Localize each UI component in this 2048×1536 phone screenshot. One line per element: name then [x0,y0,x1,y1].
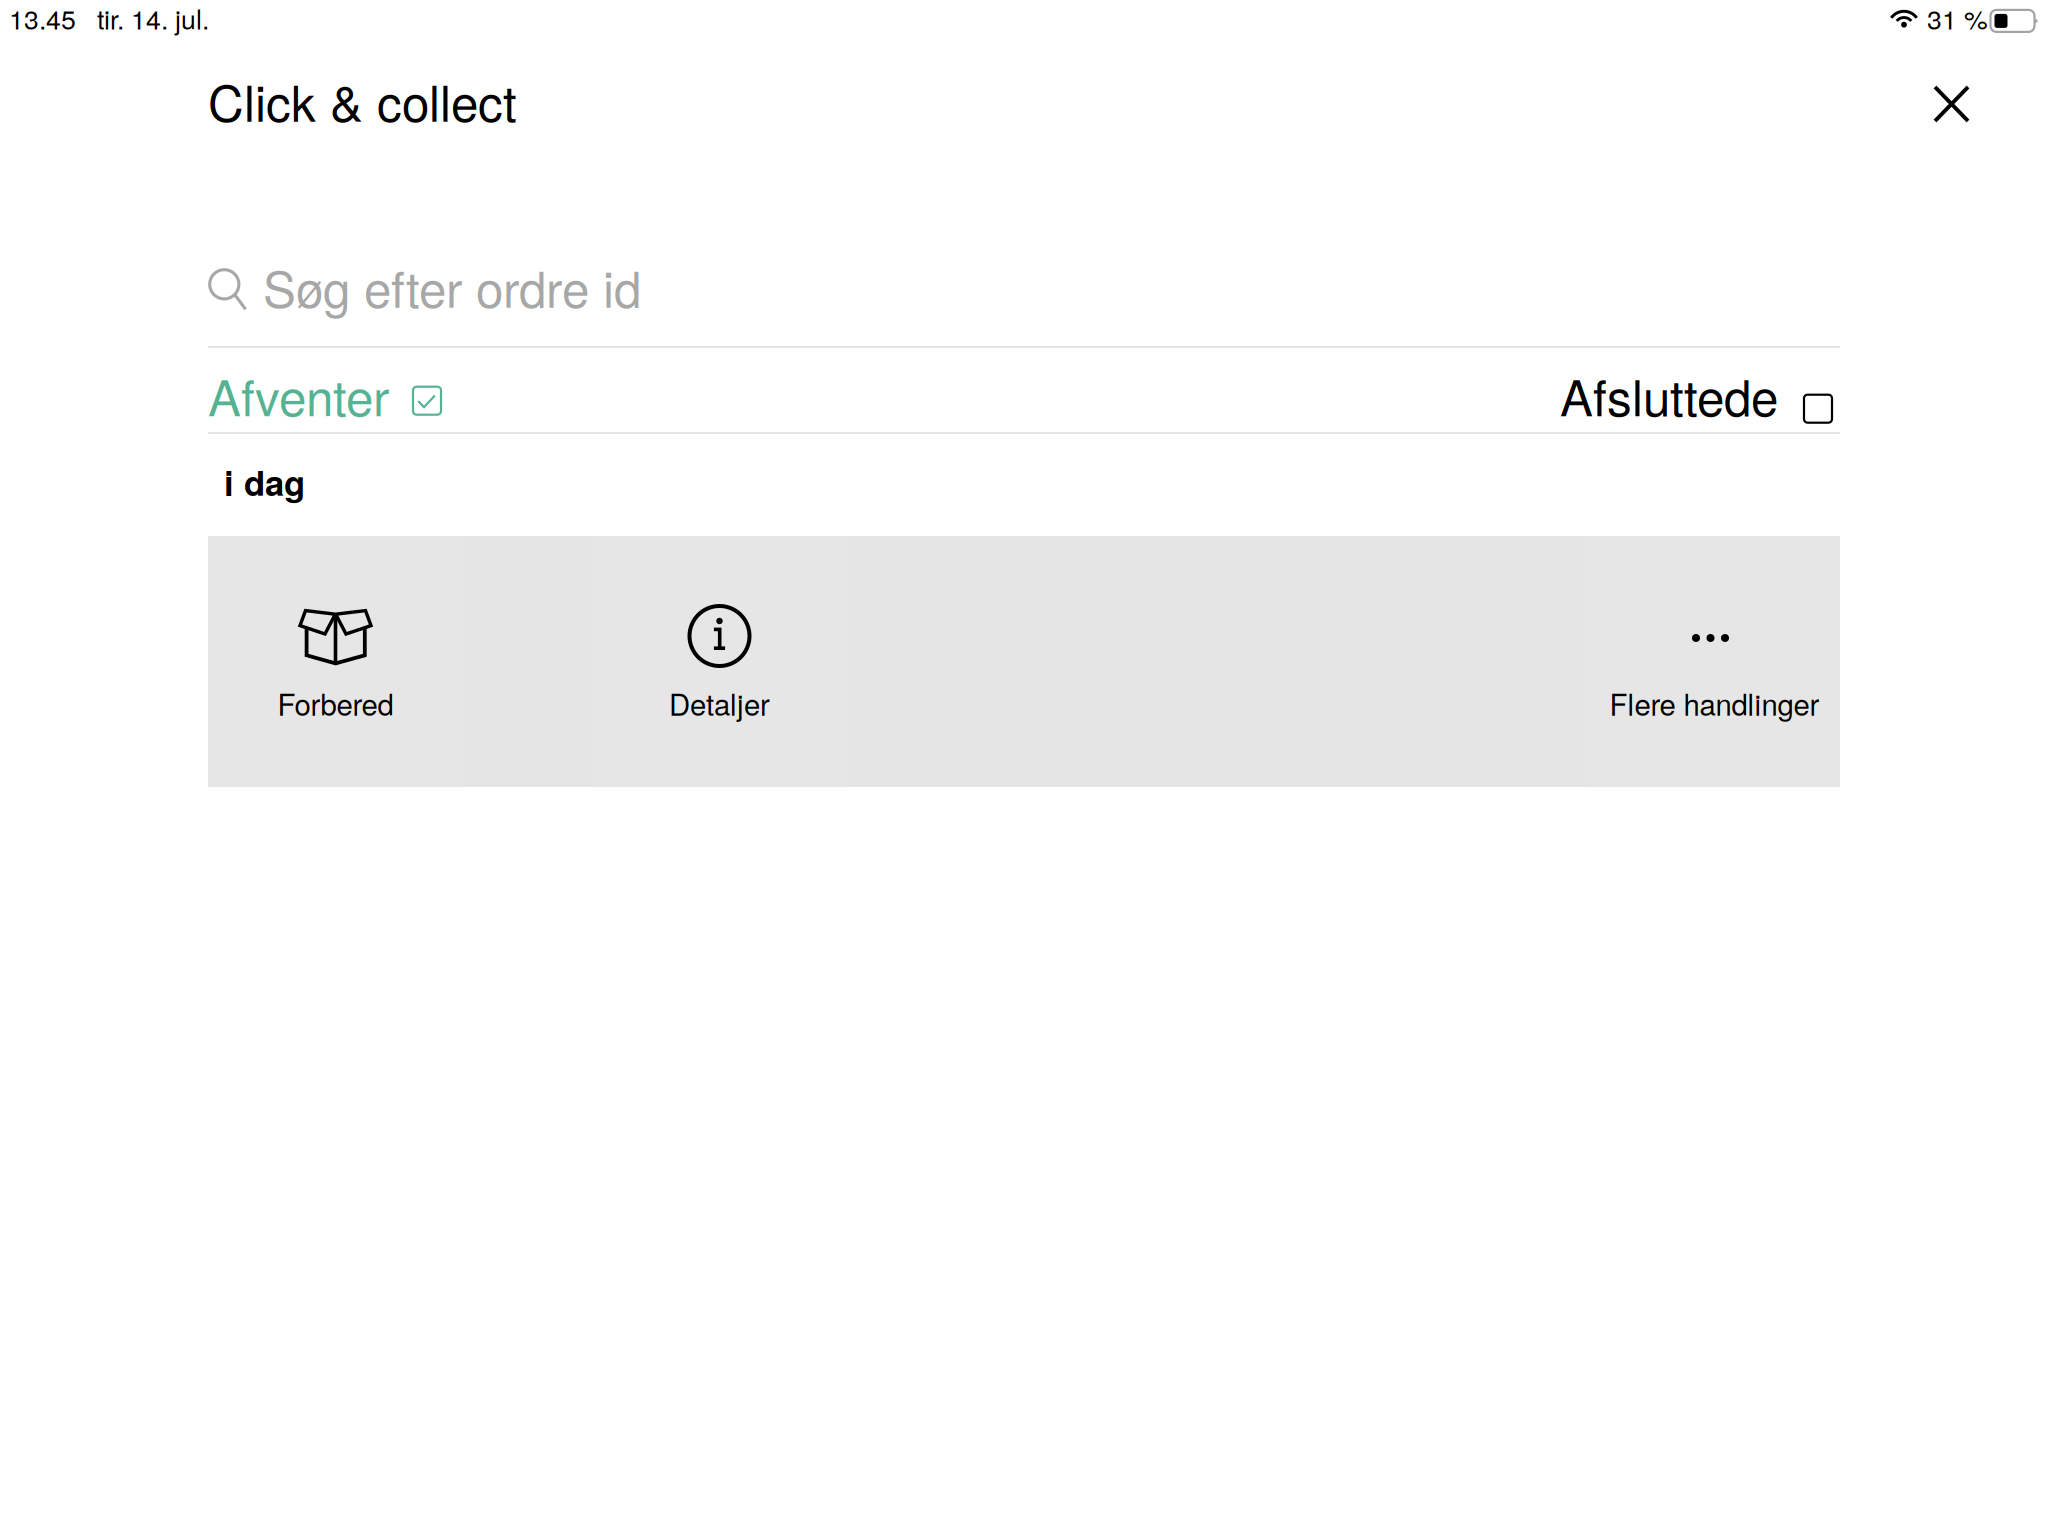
staticText: Click & collect [208,65,517,136]
staticText: Flere handlinger [1609,682,1819,724]
button[interactable]: Detaljer [591,536,848,787]
button[interactable]: Søg efter ordre id [208,253,1840,341]
button[interactable]: Afventer [208,367,440,423]
staticText: 31 % [1927,0,1988,37]
button[interactable]: Forbered [208,536,463,787]
button[interactable]: Afsluttede [1560,367,1840,423]
staticText: Søg efter ordre id [263,251,641,322]
button[interactable]: Luk [1911,63,1992,145]
staticText: Forbered [277,682,393,724]
staticText: i dag [224,457,305,507]
staticText: Detaljer [669,682,770,724]
staticText: 13.45 [9,0,76,37]
button[interactable]: Flere handlinger [1589,536,1840,787]
staticText: Afventer [208,360,389,430]
staticText: Afsluttede [1560,360,1778,430]
staticText: tir. 14. jul. [97,0,209,37]
